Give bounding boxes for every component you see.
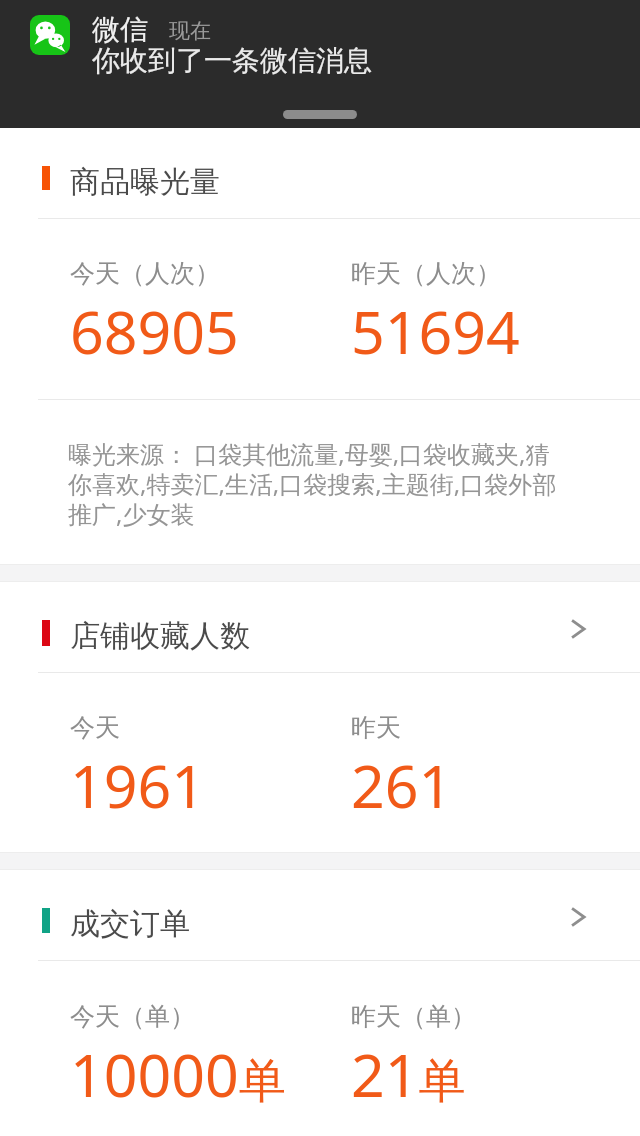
staticText: 昨天（人次） [351,258,501,289]
staticText: 现在 [169,18,211,44]
staticText: 商品曝光量 [70,163,220,201]
staticText: 曝光来源： 口袋其他流量,母婴,口袋收藏夹,猜 你喜欢,特卖汇,生活,口袋搜索,… [68,437,557,530]
staticText: 51694 [351,291,520,371]
staticText: 昨天 [351,712,401,743]
staticText: 1961 [70,745,205,825]
staticText: 今天 [70,712,120,743]
button[interactable]: 收起通知 [283,110,357,119]
staticText: 成交订单 [70,905,190,943]
button[interactable]: 查看详情 [556,895,600,939]
button[interactable]: 店铺收藏人数 [0,582,640,673]
other: 微信 [30,15,70,55]
staticText: 你收到了一条微信消息 [92,43,372,78]
button[interactable]: 成交订单 [0,870,640,1136]
button[interactable]: 商品曝光量 [0,128,640,219]
button[interactable]: 店铺收藏人数 [0,582,640,852]
staticText: 今天（单） [70,1001,195,1032]
button[interactable]: 微信 [0,0,640,128]
staticText: 68905 [70,291,239,371]
staticText: 昨天（单） [351,1001,476,1032]
staticText: 微信 [92,12,148,47]
staticText: 10000单 [70,1034,286,1114]
staticText: 今天（人次） [70,258,220,289]
button[interactable]: 查看详情 [556,607,600,651]
staticText: 店铺收藏人数 [70,617,250,655]
staticText: 261 [351,745,453,825]
staticText: 21单 [351,1034,466,1114]
button[interactable]: 成交订单 [0,870,640,961]
